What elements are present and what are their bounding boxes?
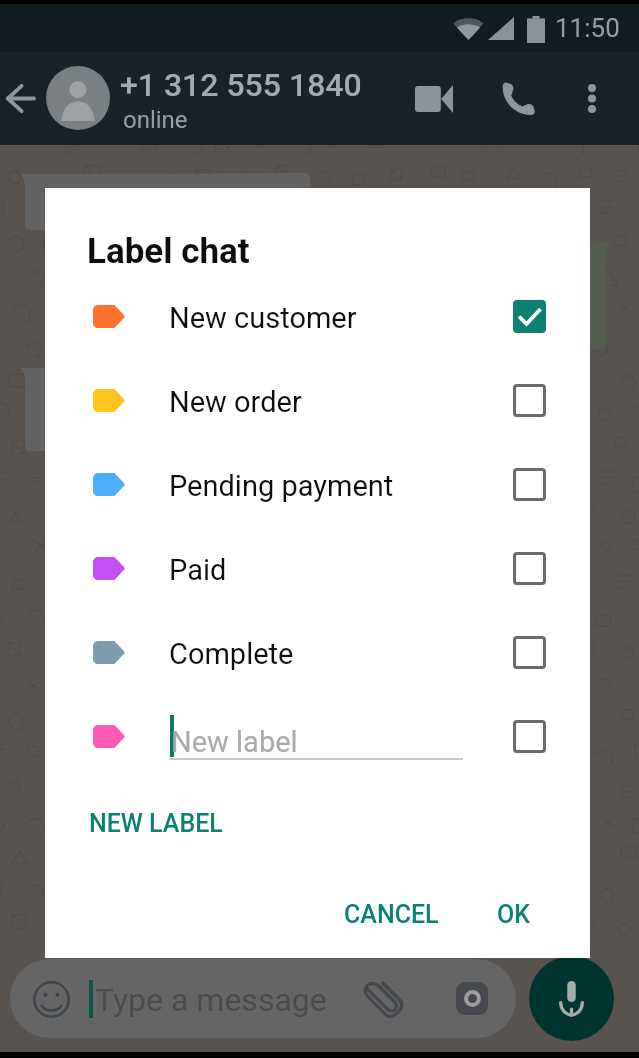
staticText: New customer xyxy=(169,301,357,335)
button[interactable]: Type a message xyxy=(10,959,516,1038)
staticText: +1 312 555 1840 xyxy=(120,66,362,104)
staticText: Label chat xyxy=(87,231,250,272)
button[interactable]: New label xyxy=(45,694,590,778)
staticText: Type a message xyxy=(95,981,327,1019)
button[interactable]: Voice call xyxy=(494,52,543,145)
staticText: online xyxy=(123,106,188,134)
button[interactable]: Complete xyxy=(45,610,590,694)
button[interactable]: NEW LABEL xyxy=(81,801,231,846)
staticText: Pending payment xyxy=(169,469,394,503)
staticText: Complete xyxy=(169,637,294,671)
staticText: 11:50 xyxy=(555,13,620,43)
button[interactable]: Back xyxy=(0,52,46,145)
staticText: OK xyxy=(497,900,531,929)
button[interactable]: New customer xyxy=(45,274,590,358)
button[interactable]: Pending payment xyxy=(45,442,590,526)
button[interactable]: New order xyxy=(45,358,590,442)
button[interactable]: Paid xyxy=(45,526,590,610)
staticText: New order xyxy=(169,385,302,419)
staticText: CANCEL xyxy=(344,900,439,929)
staticText: New label xyxy=(171,725,298,759)
button[interactable]: OK xyxy=(481,890,547,939)
button[interactable]: Video call xyxy=(405,52,462,145)
button[interactable]: Record voice message xyxy=(529,956,614,1041)
staticText: Paid xyxy=(169,553,227,587)
button[interactable]: CANCEL xyxy=(328,890,455,939)
staticText: NEW LABEL xyxy=(89,809,223,838)
button[interactable]: More options xyxy=(568,52,616,145)
